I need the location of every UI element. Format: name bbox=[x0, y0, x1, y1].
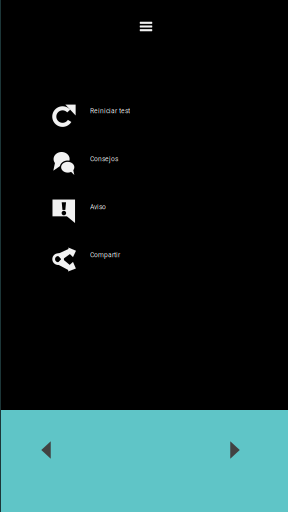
button[interactable]: Consejos bbox=[0, 139, 288, 187]
button[interactable]: Menu bbox=[122, 4, 166, 48]
button[interactable]: Previous bbox=[23, 430, 69, 470]
button[interactable]: Reiniciar test bbox=[0, 91, 288, 139]
button[interactable]: Aviso bbox=[0, 187, 288, 235]
staticText: Aviso bbox=[90, 203, 106, 211]
staticText: Reiniciar test bbox=[90, 107, 130, 115]
button[interactable]: Next bbox=[212, 430, 258, 470]
staticText: Compartir bbox=[90, 251, 120, 259]
staticText: Consejos bbox=[90, 155, 118, 163]
button[interactable]: Compartir bbox=[0, 235, 288, 283]
